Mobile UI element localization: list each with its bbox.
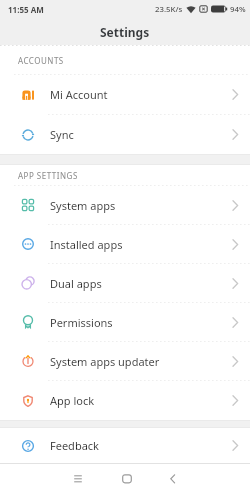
staticText: ACCOUNTS xyxy=(18,55,64,66)
staticText: System apps updater xyxy=(50,354,160,369)
button[interactable]: System apps xyxy=(0,186,250,224)
staticText: Permissions xyxy=(50,315,113,330)
button[interactable]: App lock xyxy=(0,381,250,420)
staticText: Feedback xyxy=(50,438,99,453)
button[interactable]: Dual apps xyxy=(0,264,250,302)
staticText: Settings xyxy=(100,24,150,40)
staticText: 23.5K/s xyxy=(155,4,183,15)
button[interactable]: Mi Account xyxy=(0,75,250,114)
button[interactable]: Installed apps xyxy=(0,225,250,263)
button[interactable] xyxy=(167,473,179,485)
button[interactable] xyxy=(72,473,84,485)
button[interactable]: Sync xyxy=(0,115,250,154)
button[interactable]: Feedback xyxy=(0,428,250,463)
staticText: App lock xyxy=(50,393,95,408)
staticText: 11:55 AM xyxy=(8,4,44,15)
staticText: APP SETTINGS xyxy=(18,170,78,181)
staticText: Dual apps xyxy=(50,276,102,291)
button[interactable]: System apps updater xyxy=(0,342,250,380)
staticText: Sync xyxy=(50,127,74,142)
button[interactable]: Permissions xyxy=(0,303,250,341)
button[interactable] xyxy=(121,473,133,485)
staticText: System apps xyxy=(50,198,116,213)
staticText: 94% xyxy=(230,4,246,15)
staticText: Installed apps xyxy=(50,237,123,252)
staticText: Mi Account xyxy=(50,87,108,102)
